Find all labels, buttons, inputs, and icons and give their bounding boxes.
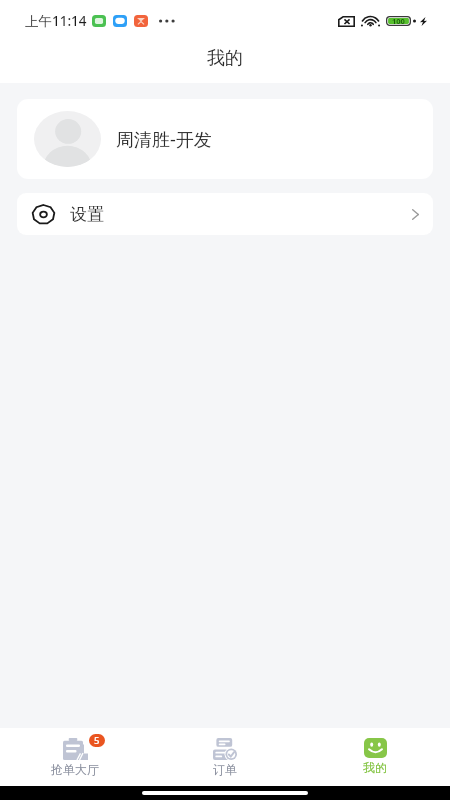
other: 设置 bbox=[31, 202, 56, 227]
staticText: 订单 bbox=[213, 762, 237, 777]
staticText: 周清胜-开发 bbox=[116, 127, 212, 152]
button[interactable]: 订单 bbox=[150, 728, 300, 786]
button[interactable]: 设置 bbox=[17, 193, 433, 235]
staticText: 抢单大厅 bbox=[51, 762, 99, 777]
staticText: 我的 bbox=[207, 47, 243, 70]
staticText: 5 bbox=[94, 734, 100, 747]
staticText: 我的 bbox=[363, 760, 387, 775]
staticText: 上午11:14 bbox=[25, 12, 87, 30]
staticText: 100 bbox=[392, 16, 405, 26]
button[interactable]: 我的 bbox=[300, 728, 450, 786]
staticText: 设置 bbox=[70, 204, 104, 225]
button[interactable]: 抢单大厅 bbox=[0, 728, 150, 786]
button[interactable]: 周清胜-开发 bbox=[17, 99, 433, 179]
